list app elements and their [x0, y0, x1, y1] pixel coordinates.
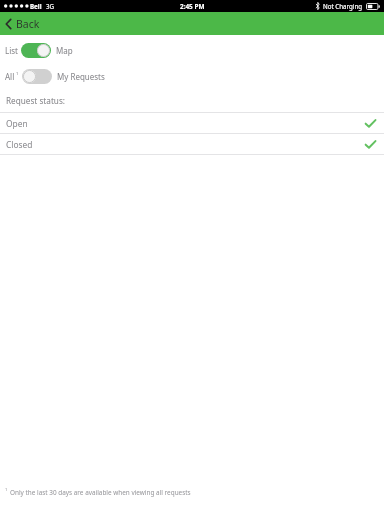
button[interactable]: List [0, 41, 384, 60]
staticText: Back [16, 17, 40, 31]
staticText: Only the last 30 days are available when… [10, 488, 191, 497]
staticText: Bell [30, 2, 42, 10]
staticText: 2:45 PM [180, 2, 205, 11]
button[interactable]: Open [0, 113, 384, 133]
staticText: 3G [46, 2, 55, 10]
staticText: All [5, 71, 15, 82]
button[interactable]: Toggle on [21, 43, 51, 58]
staticText: 1 [5, 487, 8, 493]
staticText: My Requests [57, 71, 105, 82]
button[interactable]: Toggle off [22, 69, 52, 84]
staticText: Map [56, 45, 73, 56]
button[interactable]: All [0, 67, 384, 86]
staticText: Open [6, 118, 28, 129]
staticText: Closed [6, 139, 33, 150]
staticText: Request status: [6, 95, 66, 106]
staticText: List [5, 45, 18, 56]
staticText: Not Charging [323, 2, 363, 10]
staticText: 1 [16, 71, 19, 77]
button[interactable]: Closed [0, 134, 384, 154]
button[interactable]: Back [0, 12, 48, 35]
